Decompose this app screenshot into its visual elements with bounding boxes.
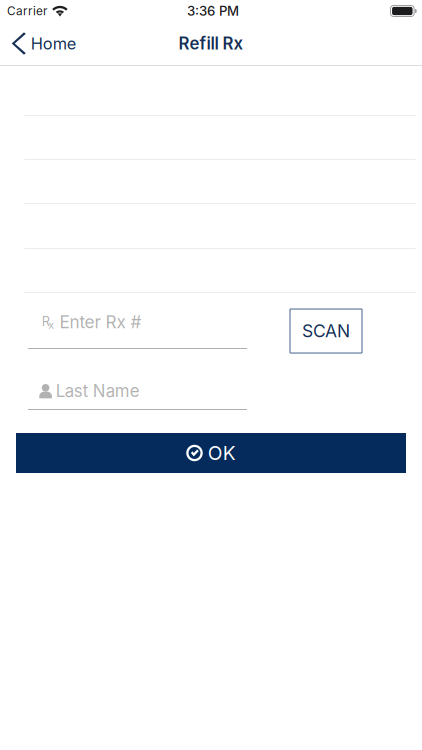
staticText: Last Name [56,381,140,401]
staticText: SCAN [302,320,350,341]
button[interactable]: OK [16,433,406,473]
staticText: 3:36 PM [187,3,239,19]
staticText: Refill Rx [178,33,243,54]
staticText: x [48,318,54,331]
staticText: Enter Rx # [59,312,141,332]
staticText: Home [31,34,77,53]
staticText: OK [208,441,236,465]
staticText: Carrier [7,4,47,18]
button[interactable]: Home [0,22,87,65]
button[interactable]: SCAN [290,309,362,353]
staticText: R [42,313,50,329]
